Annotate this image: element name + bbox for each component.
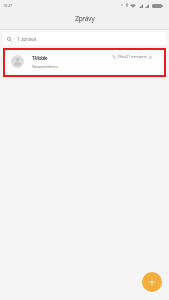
button[interactable]: 1 zpráva bbox=[3, 32, 166, 45]
staticText: T-Mobile bbox=[32, 55, 48, 61]
staticText: 1 zpráva bbox=[17, 35, 36, 43]
staticText: Zprávy bbox=[75, 14, 95, 24]
button[interactable]: T-Mobile bbox=[5, 50, 164, 75]
staticText: Nastavení telefonu bbox=[32, 64, 58, 69]
staticText: 10:27 bbox=[3, 3, 12, 8]
staticText: Před 21 minutami bbox=[118, 54, 147, 60]
button[interactable]: New message bbox=[142, 272, 162, 292]
